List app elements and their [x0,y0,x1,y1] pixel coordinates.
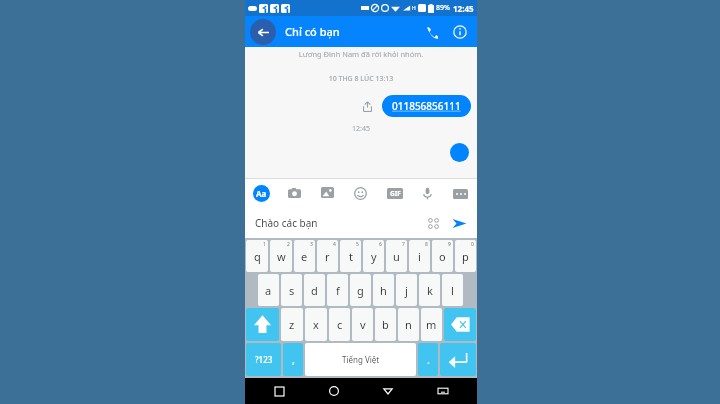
button[interactable]: Back [378,381,398,401]
staticText: 5 [356,241,359,248]
staticText: y [371,249,377,264]
button[interactable]: y [363,240,384,272]
staticText: H [412,5,416,12]
button[interactable]: Voice message [419,185,436,202]
staticText: h [380,283,387,298]
staticText: j [405,283,408,298]
staticText: z [289,317,295,332]
staticText: Lương Đình Nam đã rời khỏi nhóm. [245,49,477,59]
staticText: 3 [310,241,313,248]
button[interactable]: Enter [440,343,476,376]
button[interactable]: h [373,274,394,306]
staticText: 6 [379,241,382,248]
staticText: a [265,283,272,298]
button[interactable]: Chào các bạn [245,207,477,238]
staticText: e [301,249,308,264]
staticText: , [292,352,295,367]
button[interactable]: o [432,240,453,272]
button[interactable]: Photos [319,185,336,202]
button[interactable]: Share [358,97,376,115]
button[interactable]: , [283,343,303,376]
button[interactable]: e [294,240,315,272]
button[interactable]: d [304,274,325,306]
staticText: d [311,283,318,298]
staticText: Chào các bạn [255,216,318,230]
staticText: 9 [448,241,451,248]
staticText: r [325,249,330,264]
staticText: 7 [402,241,405,248]
button[interactable]: u [386,240,407,272]
staticText: p [462,249,469,264]
button[interactable]: f [327,274,348,306]
button[interactable]: 011856856111 [382,95,471,117]
staticText: 12:45 [245,124,477,134]
button[interactable]: Stickers [352,185,369,202]
button[interactable]: r [317,240,338,272]
staticText: u [393,249,400,264]
button[interactable]: Emoji keyboard [424,214,442,232]
staticText: n [405,317,412,332]
button[interactable]: m [421,308,442,341]
button[interactable]: Recents [269,381,289,401]
staticText: 4 [333,241,336,248]
button[interactable]: Send [449,213,469,233]
button[interactable]: Back [250,19,276,45]
button[interactable]: . [418,343,438,376]
button[interactable]: b [375,308,396,341]
button[interactable]: z [281,308,303,341]
button[interactable]: g [350,274,371,306]
staticText: Chỉ có bạn [285,24,340,39]
button[interactable]: q [246,240,268,272]
staticText: c [337,317,343,332]
button[interactable]: w [270,240,292,272]
button[interactable]: s [281,274,302,306]
staticText: 011856856111 [392,99,461,113]
button[interactable]: ?123 [246,343,281,376]
button[interactable]: GIF [386,185,403,202]
button[interactable]: l [442,274,463,306]
staticText: q [254,249,261,264]
staticText: k [427,283,433,298]
staticText: 8 [425,241,428,248]
staticText: 10 THG 8 LÚC 13:13 [245,74,477,84]
staticText: 0 [471,241,474,248]
staticText: b [382,317,389,332]
staticText: s [289,283,295,298]
staticText: Aa [256,188,267,199]
button[interactable]: c [329,308,350,341]
button[interactable]: Shift [246,308,279,341]
button[interactable]: a [258,274,279,306]
staticText: GIF [390,189,401,198]
button[interactable]: Call [420,20,444,44]
button[interactable]: Details [448,20,472,44]
staticText: . [427,352,430,367]
button[interactable]: Camera [286,185,303,202]
staticText: t [349,249,353,264]
button[interactable]: k [419,274,440,306]
button[interactable]: i [409,240,430,272]
staticText: g [357,283,364,298]
staticText: m [426,317,437,332]
staticText: l [451,283,454,298]
button[interactable]: j [396,274,417,306]
button[interactable]: More [452,185,469,202]
button[interactable]: n [398,308,419,341]
button[interactable]: Text formatting [253,185,270,202]
button[interactable]: t [340,240,361,272]
button[interactable]: p [455,240,476,272]
button[interactable]: x [305,308,327,341]
staticText: f [336,283,340,298]
staticText: i [418,249,421,264]
staticText: 89% [436,3,450,13]
staticText: v [360,317,366,332]
button[interactable]: v [352,308,373,341]
button[interactable]: Backspace [444,308,476,341]
button[interactable]: Tiếng Việt [305,343,416,376]
staticText: x [313,317,319,332]
button[interactable]: Switch keyboard [433,381,453,401]
staticText: ?123 [255,354,273,365]
staticText: 1 [263,241,266,248]
staticText: 2 [287,241,290,248]
staticText: w [277,249,286,264]
button[interactable]: Home [324,381,344,401]
